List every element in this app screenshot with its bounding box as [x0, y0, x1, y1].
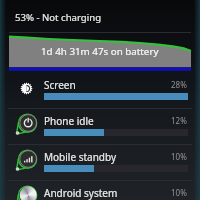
button[interactable]: Phone idle: [0, 108, 200, 144]
staticText: 10%: [171, 187, 187, 198]
staticText: 1d 4h 31m 47s on battery: [41, 45, 159, 58]
staticText: Android system: [44, 186, 118, 200]
button[interactable]: Mobile standby: [0, 144, 200, 180]
staticText: Mobile standby: [44, 150, 117, 164]
button[interactable]: Android system: [0, 180, 200, 200]
staticText: 53% - Not charging: [15, 11, 102, 24]
staticText: 10%: [171, 151, 187, 162]
staticText: Phone idle: [44, 114, 94, 128]
staticText: Screen: [44, 78, 76, 92]
button[interactable]: Screen: [0, 72, 200, 108]
staticText: 12%: [171, 115, 187, 126]
staticText: 28%: [171, 79, 187, 90]
